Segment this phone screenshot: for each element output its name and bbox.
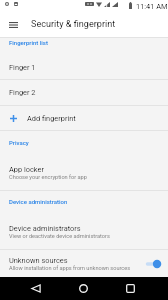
staticText: Device administrators [9, 224, 81, 233]
staticText: Security & fingerprint [31, 19, 116, 30]
button[interactable]: Device administrators [0, 214, 168, 249]
staticText: Unknown sources [9, 256, 68, 265]
button[interactable]: Unknown sources toggle [144, 257, 163, 271]
button[interactable]: Open navigation menu [0, 12, 26, 37]
staticText: Fingerprint list [9, 39, 48, 46]
staticText: Device administration [9, 198, 68, 205]
staticText: App locker [9, 165, 44, 174]
staticText: Allow installation of apps from unknown … [9, 265, 131, 272]
staticText: Add fingerprint [27, 114, 76, 123]
button[interactable]: Unknown sources [0, 250, 168, 277]
button[interactable]: App locker [0, 155, 168, 190]
button[interactable]: Back [19, 277, 53, 300]
button[interactable]: Home [66, 277, 100, 300]
button[interactable]: Finger 2 [0, 80, 168, 105]
staticText: View or deactivate device administrators [9, 233, 110, 240]
staticText: 11:41 AM [136, 2, 168, 11]
staticText: Finger 1 [9, 63, 36, 72]
button[interactable]: Add fingerprint [0, 106, 168, 130]
staticText: Choose your encryption for app [9, 174, 87, 181]
button[interactable]: Finger 1 [0, 55, 168, 79]
staticText: Finger 2 [9, 88, 36, 97]
button[interactable]: Recent apps [113, 277, 147, 300]
staticText: Privacy [9, 139, 29, 146]
